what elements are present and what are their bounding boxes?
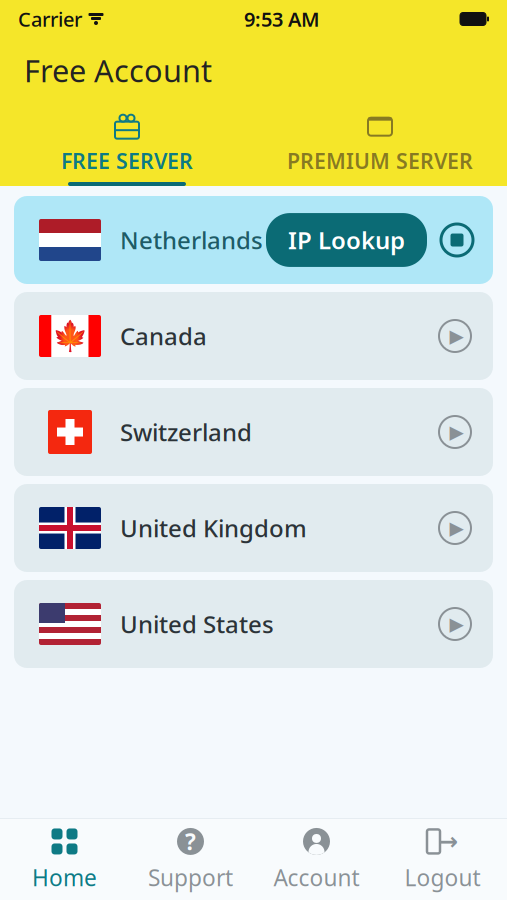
staticText: Carrier xyxy=(18,6,82,32)
staticText: ? xyxy=(185,826,196,856)
button[interactable]: Account xyxy=(253,819,379,900)
staticText: Netherlands xyxy=(120,224,263,256)
staticText: IP Lookup xyxy=(288,224,405,256)
staticText: United States xyxy=(120,608,274,640)
staticText: FREE SERVER xyxy=(61,147,193,175)
staticText: 🍁 xyxy=(51,319,88,353)
staticText: Support xyxy=(148,862,233,892)
staticText: Free Account xyxy=(24,50,212,91)
staticText: Canada xyxy=(120,320,207,352)
staticText: ▶ xyxy=(449,613,463,635)
staticText: Home xyxy=(32,862,97,892)
button[interactable]: United Kingdom xyxy=(14,484,493,572)
button[interactable]: FREE SERVER xyxy=(0,100,253,186)
staticText: Switzerland xyxy=(120,416,252,448)
staticText: 9:53 AM xyxy=(244,6,320,32)
button[interactable]: Switzerland xyxy=(14,388,493,476)
button[interactable]: → xyxy=(379,819,505,900)
staticText: ▶ xyxy=(449,517,463,539)
staticText: Logout xyxy=(404,862,480,892)
staticText: United Kingdom xyxy=(120,512,307,544)
button[interactable]: ? xyxy=(127,819,253,900)
button[interactable]: Home xyxy=(1,819,127,900)
button[interactable]: PREMIUM SERVER xyxy=(253,100,506,186)
button[interactable]: United States xyxy=(14,580,493,668)
staticText: Account xyxy=(273,862,359,892)
staticText: → xyxy=(438,828,458,855)
staticText: ▶ xyxy=(449,421,463,443)
button[interactable]: Netherlands xyxy=(14,196,493,284)
staticText: PREMIUM SERVER xyxy=(287,147,473,175)
button[interactable]: 🍁 xyxy=(14,292,493,380)
staticText: ▶ xyxy=(449,325,463,347)
